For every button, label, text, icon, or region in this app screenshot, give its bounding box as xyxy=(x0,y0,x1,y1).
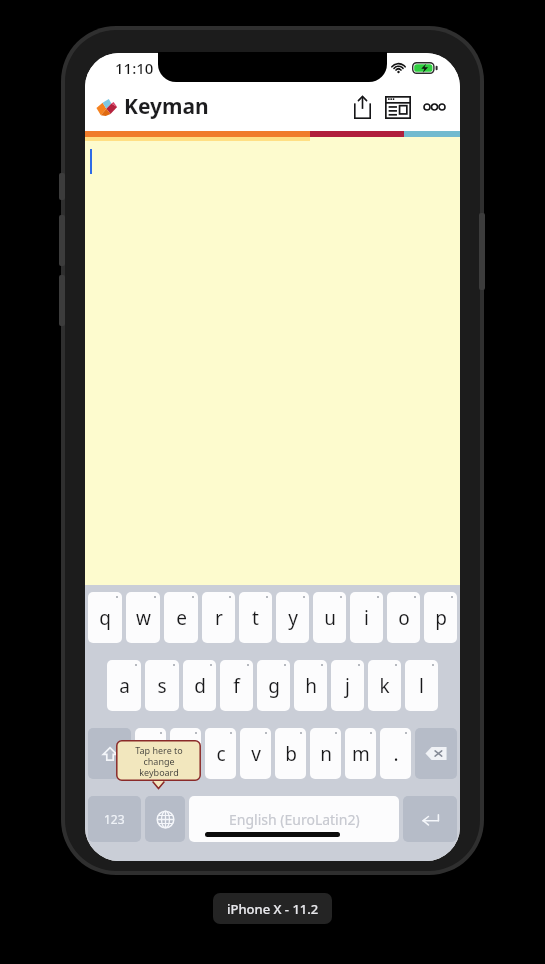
button[interactable]: Share xyxy=(347,90,377,124)
button[interactable]: b xyxy=(275,728,306,779)
button[interactable]: o xyxy=(387,592,420,643)
button[interactable]: i xyxy=(350,592,383,643)
staticText: q xyxy=(99,605,111,631)
button[interactable]: 123 xyxy=(88,796,141,842)
other: Change keyboard xyxy=(156,810,175,829)
staticText: a xyxy=(119,673,130,699)
staticText: n xyxy=(320,741,332,767)
staticText: Keyman xyxy=(124,92,209,121)
staticText: o xyxy=(398,605,410,631)
staticText: y xyxy=(288,605,298,631)
staticText: h xyxy=(305,673,317,699)
staticText: . xyxy=(393,741,399,767)
staticText: Tap here to change keyboard xyxy=(135,744,183,778)
button[interactable]: Backspace xyxy=(415,728,457,779)
staticText: j xyxy=(345,673,350,699)
other: Shift xyxy=(102,746,118,762)
button[interactable]: u xyxy=(313,592,346,643)
other: Return xyxy=(420,812,440,827)
button[interactable]: s xyxy=(145,660,179,711)
staticText: z xyxy=(146,741,155,767)
button[interactable]: y xyxy=(276,592,309,643)
staticText: English (EuroLatin2) xyxy=(229,810,360,829)
button[interactable]: a xyxy=(107,660,141,711)
button[interactable]: Return xyxy=(403,796,457,842)
staticText: iPhone X - 11.2 xyxy=(227,900,319,918)
button[interactable]: m xyxy=(345,728,376,779)
button[interactable]: e xyxy=(164,592,198,643)
button[interactable]: q xyxy=(88,592,122,643)
button[interactable]: f xyxy=(220,660,253,711)
staticText: c xyxy=(216,741,226,767)
button[interactable]: w xyxy=(126,592,160,643)
staticText: b xyxy=(285,741,297,767)
staticText: 11:10 xyxy=(115,58,154,78)
button[interactable]: n xyxy=(310,728,341,779)
button[interactable]: g xyxy=(257,660,290,711)
staticText: f xyxy=(233,673,240,699)
staticText: i xyxy=(364,605,369,631)
staticText: p xyxy=(435,605,447,631)
button[interactable]: j xyxy=(331,660,364,711)
button[interactable]: Shift xyxy=(88,728,131,779)
staticText: l xyxy=(419,673,424,699)
staticText: e xyxy=(176,605,187,631)
button[interactable]: p xyxy=(424,592,457,643)
staticText: u xyxy=(324,605,336,631)
button[interactable]: k xyxy=(368,660,401,711)
button[interactable]: c xyxy=(205,728,236,779)
button[interactable]: x xyxy=(170,728,201,779)
button[interactable]: Keyman xyxy=(85,86,217,127)
button[interactable]: English (EuroLatin2) xyxy=(189,796,399,842)
staticText: x xyxy=(180,741,191,767)
button[interactable]: Browser xyxy=(381,90,415,124)
button[interactable]: r xyxy=(202,592,235,643)
button[interactable]: v xyxy=(240,728,271,779)
button[interactable]: Change keyboard xyxy=(145,796,185,842)
staticText: v xyxy=(251,741,261,767)
staticText: d xyxy=(194,673,206,699)
button[interactable]: l xyxy=(405,660,438,711)
staticText: k xyxy=(379,673,390,699)
staticText: 123 xyxy=(104,811,125,827)
staticText: m xyxy=(352,741,370,767)
button[interactable]: . xyxy=(380,728,411,779)
button[interactable]: More options xyxy=(418,90,450,124)
staticText: t xyxy=(252,605,259,631)
staticText: s xyxy=(157,673,167,699)
button[interactable]: d xyxy=(183,660,216,711)
button[interactable]: iPhone X - 11.2 xyxy=(213,893,332,924)
button[interactable]: z xyxy=(135,728,166,779)
other: Backspace xyxy=(425,746,447,761)
button[interactable]: t xyxy=(239,592,272,643)
staticText: r xyxy=(215,605,223,631)
staticText: g xyxy=(268,673,280,699)
staticText: w xyxy=(136,605,151,631)
button[interactable]: h xyxy=(294,660,327,711)
